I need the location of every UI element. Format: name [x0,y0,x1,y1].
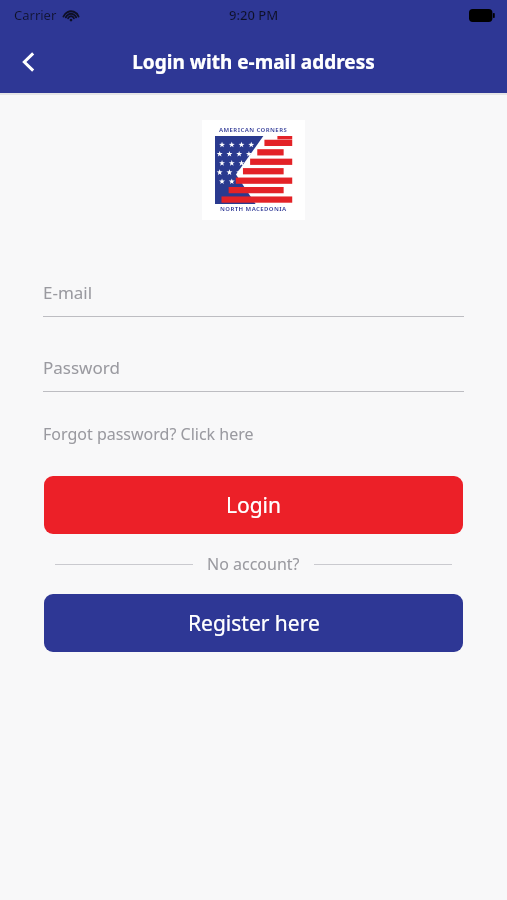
staticText: Login with e-mail address [132,49,375,75]
staticText: Password [43,356,120,379]
button[interactable]: E-mail [43,268,464,316]
staticText: AMERICAN CORNERS [219,126,288,134]
staticText: Forgot password? Click here [43,423,254,445]
staticText: E-mail [43,281,93,304]
button[interactable]: Register here [44,594,463,652]
staticText: Carrier [14,6,57,24]
button[interactable]: Forgot password? Click here [43,420,254,448]
staticText: NORTH MACEDONIA [220,205,287,213]
button[interactable]: Login [44,476,463,534]
staticText: No account? [207,553,300,575]
button[interactable]: Password [43,343,464,391]
button[interactable]: Back [6,39,52,85]
staticText: 9:20 PM [229,6,279,24]
staticText: Register here [188,609,320,638]
staticText: Login [226,491,282,520]
